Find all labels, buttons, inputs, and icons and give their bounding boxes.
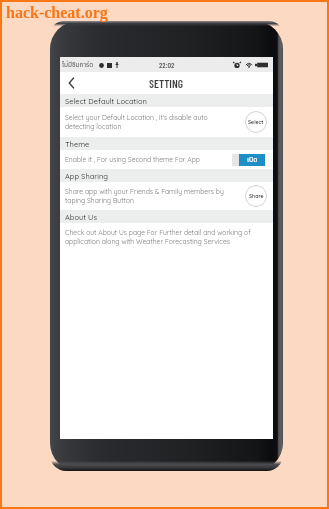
staticText: Share app with your Friends & Family mem… [65, 187, 245, 205]
button[interactable]: Share [245, 185, 267, 207]
staticText: Theme [65, 139, 90, 148]
staticText: About Us [65, 212, 97, 221]
staticText: Enable it , For using Second theme For A… [65, 155, 232, 164]
staticText: ไม่มีซิมการ์ด [62, 60, 94, 70]
button[interactable]: Select [245, 111, 267, 133]
staticText: Share [249, 193, 264, 199]
staticText: Select [248, 119, 264, 125]
staticText: SETTING [149, 76, 184, 90]
staticText: Select Default Location [65, 96, 147, 105]
staticText: เปิด [247, 155, 258, 166]
staticText: App Sharing [65, 171, 109, 180]
button[interactable]: เปิด [232, 154, 265, 166]
staticText: Check out About Us page For Further deta… [65, 228, 267, 246]
staticText: 22:02 [159, 60, 175, 70]
button[interactable]: Back [60, 72, 82, 94]
staticText: Select your Default Location , it's disa… [65, 113, 245, 131]
staticText: hack-cheat.org [6, 4, 108, 22]
